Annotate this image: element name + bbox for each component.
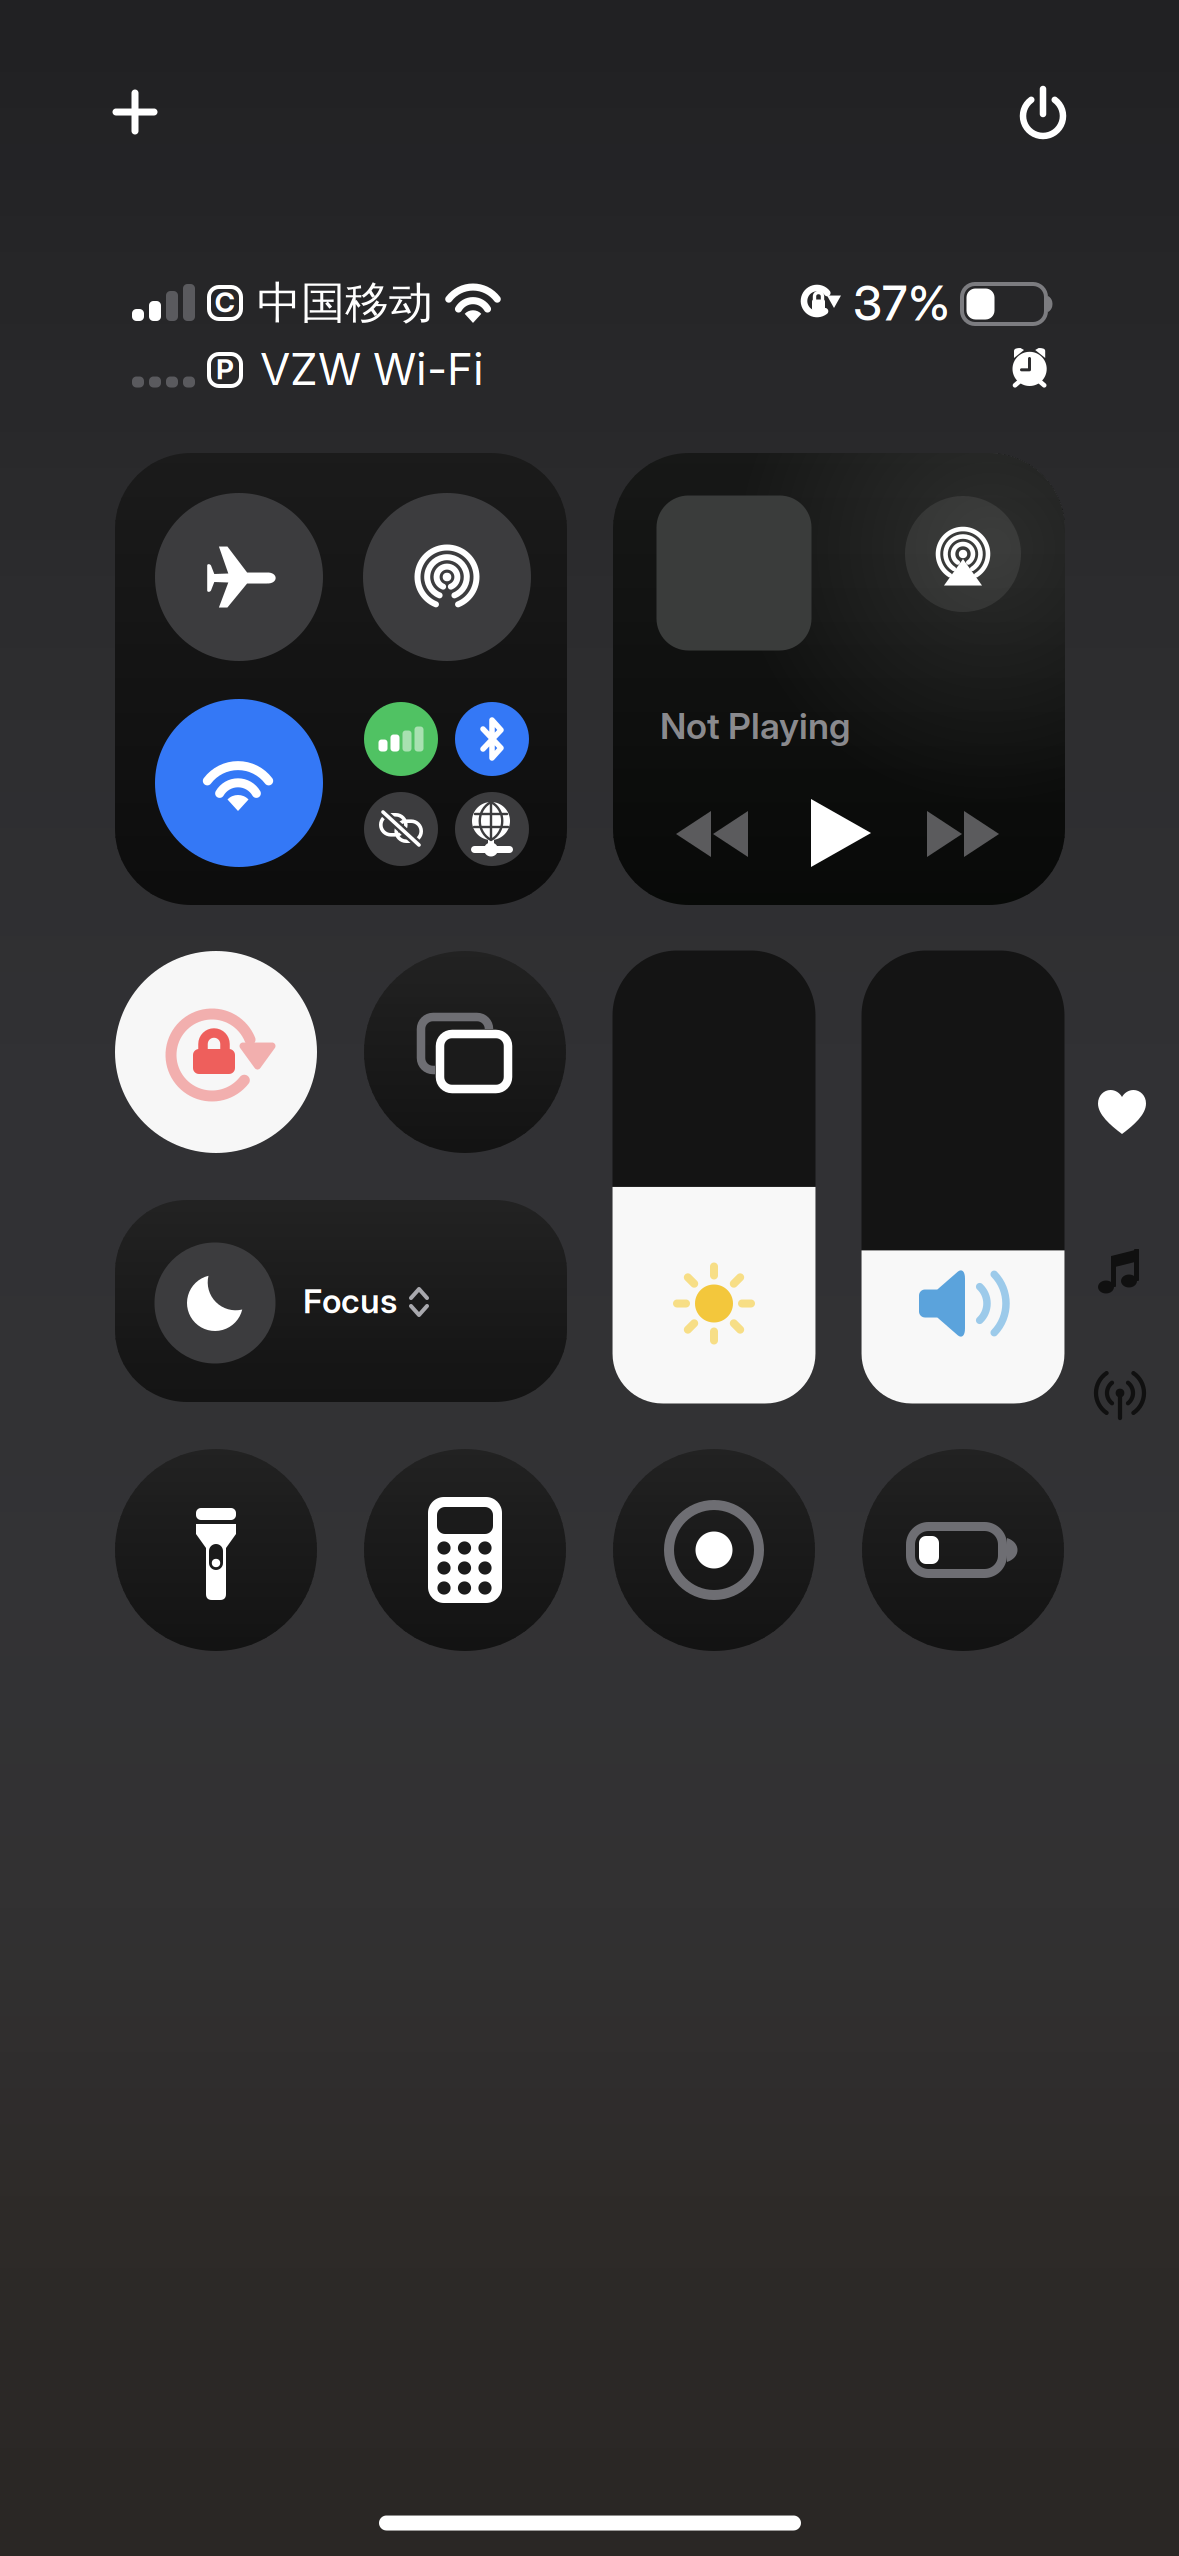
- button[interactable]: Cellular Data: [364, 702, 438, 776]
- button[interactable]: Low Power Mode: [862, 1449, 1064, 1651]
- button[interactable]: AirDrop: [363, 493, 531, 661]
- staticText: Not Playing: [660, 704, 851, 748]
- button[interactable]: Play: [807, 797, 875, 869]
- button[interactable]: Volume: [861, 950, 1064, 1403]
- staticText: VZW Wi-Fi: [260, 342, 484, 396]
- button[interactable]: Screen Recording: [613, 1449, 815, 1651]
- button[interactable]: Flashlight: [115, 1449, 317, 1651]
- button[interactable]: Connectivity page: [1092, 1367, 1148, 1421]
- staticText: C: [214, 285, 235, 319]
- button[interactable]: VPN: [455, 792, 529, 866]
- button[interactable]: Brightness: [612, 950, 815, 1403]
- button[interactable]: AirPlay: [905, 496, 1021, 612]
- button[interactable]: Wi-Fi: [155, 699, 323, 867]
- staticText: 37%: [853, 274, 950, 332]
- button[interactable]: Airplane Mode: [155, 493, 323, 661]
- button[interactable]: Power off: [1008, 81, 1078, 151]
- button[interactable]: Personal Hotspot: [364, 792, 438, 866]
- button[interactable]: Calculator: [364, 1449, 566, 1651]
- staticText: P: [216, 352, 234, 386]
- button[interactable]: Add a control: [100, 77, 170, 147]
- button[interactable]: Rotation Lock: [115, 951, 317, 1153]
- button[interactable]: Media page: [1097, 1247, 1141, 1295]
- button[interactable]: Fast forward: [925, 809, 1001, 859]
- button[interactable]: Rewind: [674, 809, 750, 859]
- staticText: 中国移动: [257, 275, 433, 331]
- button[interactable]: Favorites page: [1097, 1088, 1147, 1135]
- button[interactable]: Focus: [115, 1200, 567, 1402]
- button[interactable]: Screen Mirroring: [364, 951, 566, 1153]
- button[interactable]: Bluetooth: [455, 702, 529, 776]
- staticText: Focus: [303, 1281, 397, 1321]
